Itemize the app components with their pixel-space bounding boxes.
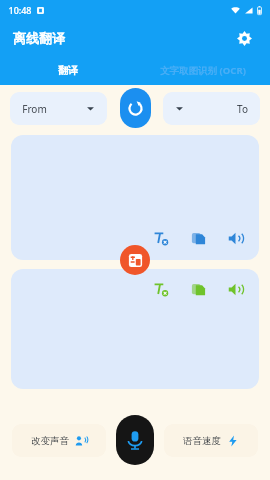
button[interactable]: Clear translation: [11, 269, 259, 389]
button[interactable]: Settings: [231, 25, 257, 51]
button[interactable]: Copy translation: [188, 279, 208, 299]
staticText: 文字取图识别 (OCR): [160, 64, 246, 77]
button[interactable]: Clear translation: [151, 279, 171, 299]
button[interactable]: 改变声音: [12, 424, 106, 457]
staticText: 10:48: [8, 4, 32, 16]
staticText: To: [237, 102, 248, 116]
staticText: 改变声音: [31, 435, 69, 447]
button[interactable]: 文字取图识别 (OCR): [135, 56, 270, 85]
staticText: 语音速度: [183, 435, 221, 447]
staticText: 翻译: [58, 64, 78, 77]
button[interactable]: To: [163, 92, 260, 125]
button[interactable]: Speak translation: [225, 279, 245, 299]
staticText: From: [22, 102, 47, 116]
button[interactable]: Clear text: [151, 228, 171, 248]
button[interactable]: Speak: [225, 228, 245, 248]
button[interactable]: Copy: [188, 228, 208, 248]
button[interactable]: From: [10, 92, 107, 125]
staticText: 离线翻译: [13, 30, 65, 46]
button[interactable]: 翻译: [0, 56, 135, 85]
button[interactable]: Translate: [120, 245, 150, 275]
button[interactable]: Clear text: [11, 135, 259, 260]
button[interactable]: Swap languages: [120, 88, 151, 128]
button[interactable]: 语音速度: [164, 424, 258, 457]
button[interactable]: Voice input: [116, 415, 154, 465]
